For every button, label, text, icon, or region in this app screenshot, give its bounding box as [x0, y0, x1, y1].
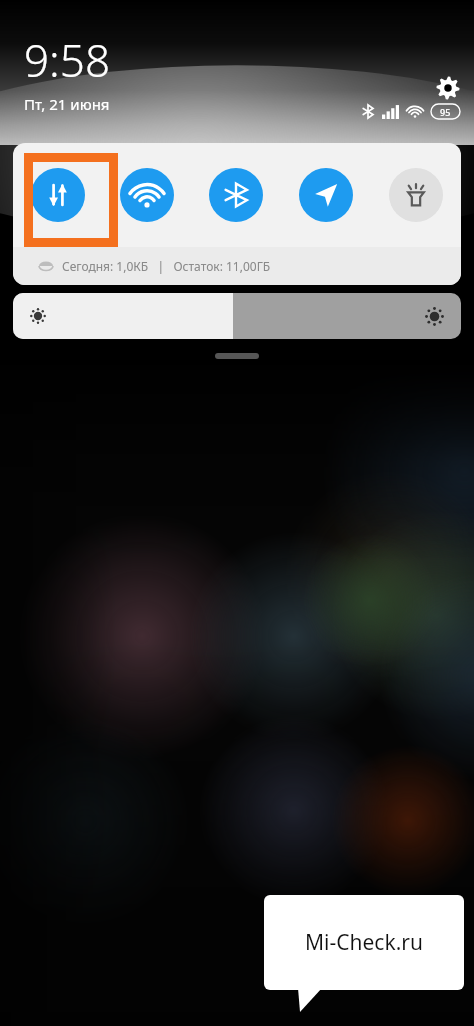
button[interactable]: Flashlight: [371, 143, 461, 247]
button[interactable]: Wi-Fi: [102, 143, 191, 247]
staticText: 9:58: [24, 30, 111, 90]
button[interactable]: Settings: [430, 70, 466, 106]
staticText: Mi-Check.ru: [305, 928, 423, 957]
button[interactable]: Сегодня: 1,0КБ | Остаток: 11,00ГБ: [13, 247, 461, 285]
button[interactable]: Location: [281, 143, 371, 247]
staticText: Сегодня: 1,0КБ | Остаток: 11,00ГБ: [62, 258, 271, 274]
staticText: 95: [440, 106, 451, 118]
button[interactable]: Brightness: [13, 293, 461, 339]
button[interactable]: Bluetooth: [191, 143, 281, 247]
button[interactable]: Expand: [215, 353, 259, 359]
button[interactable]: Mobile data: [13, 143, 102, 247]
staticText: Пт, 21 июня: [24, 94, 110, 114]
